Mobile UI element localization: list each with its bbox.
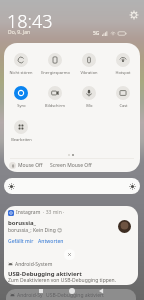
button[interactable]: Bearbeiten (4, 120, 38, 142)
button[interactable]: Einstellungen (129, 10, 139, 20)
button[interactable]: Mic (72, 86, 106, 108)
staticText: Mouse Off (18, 162, 43, 169)
button[interactable]: Android-System (4, 256, 138, 285)
button[interactable]: Startseite (69, 288, 75, 294)
button[interactable]: Mouse Off (4, 159, 140, 172)
staticText: borussia_: Kein Ding 😊 (8, 227, 63, 234)
staticText: Bildschirm (45, 103, 65, 108)
staticText: Cast (119, 103, 128, 108)
button[interactable]: Nicht stören (4, 53, 38, 75)
staticText: USB-Debugging aktiviert (46, 292, 104, 299)
staticText: Do, 9. Jan (8, 29, 31, 36)
staticText: Instagram (16, 209, 41, 216)
button[interactable]: Bildschirm (38, 86, 72, 108)
button[interactable]: Energiesparmo (38, 53, 72, 75)
staticText: USB-Debugging aktiviert (8, 270, 82, 278)
staticText: Android-Sy (17, 292, 43, 299)
staticText: Bearbeiten (11, 137, 32, 142)
button[interactable]: Instagram (4, 206, 138, 252)
button[interactable]: Vibration (72, 53, 106, 75)
staticText: borussia_ (8, 219, 37, 227)
staticText: Mic (86, 103, 93, 108)
staticText: 5G (93, 30, 100, 37)
staticText: Vibration (80, 70, 98, 75)
staticText: · 33 min · (43, 209, 65, 216)
staticText: Sync (17, 103, 26, 108)
staticText: Screen Mouse Off (50, 162, 92, 169)
staticText: Zum Deaktivieren von USB-Debugging tippe… (8, 277, 117, 284)
button[interactable]: Zurück (98, 288, 104, 294)
staticText: Energiesparmo (41, 70, 70, 75)
staticText: Nicht stören (9, 70, 33, 75)
staticText: 18:43 (7, 9, 53, 34)
button[interactable]: Sync (4, 86, 38, 108)
button[interactable]: Antworten (38, 238, 64, 245)
button[interactable]: Schließen (64, 249, 75, 260)
button[interactable]: Hotspot (106, 53, 140, 75)
button[interactable]: Android-Sy (6, 289, 136, 300)
button[interactable]: Cast (106, 86, 140, 108)
staticText: Android-System (15, 261, 53, 268)
button[interactable]: Gefällt mir (8, 238, 34, 245)
button[interactable]: Helligkeit (4, 178, 140, 194)
staticText: Hotspot (115, 70, 131, 75)
